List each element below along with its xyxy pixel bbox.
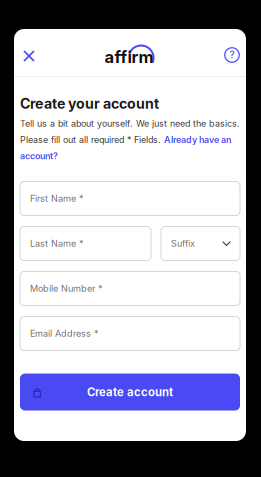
- staticText: Already have an: [164, 134, 231, 145]
- button[interactable]: Create account: [20, 373, 240, 410]
- staticText: affirm: [104, 47, 153, 67]
- staticText: Last Name *: [30, 238, 84, 249]
- button[interactable]: account?: [20, 151, 58, 161]
- staticText: Email Address *: [30, 328, 99, 339]
- staticText: ?: [229, 49, 234, 61]
- staticText: Please fill out all required * Fields.: [20, 134, 164, 145]
- staticText: Mobile Number *: [30, 283, 103, 294]
- staticText: Create account: [87, 385, 173, 399]
- button[interactable]: Already have an: [164, 134, 231, 145]
- staticText: Suffix: [171, 238, 195, 249]
- staticText: Create your account: [20, 95, 159, 112]
- button[interactable]: Close: [14, 41, 44, 71]
- button[interactable]: Help: [213, 41, 243, 71]
- staticText: Tell us a bit about yourself. We just ne…: [20, 118, 240, 129]
- staticText: First Name *: [30, 193, 84, 204]
- staticText: account?: [20, 151, 58, 161]
